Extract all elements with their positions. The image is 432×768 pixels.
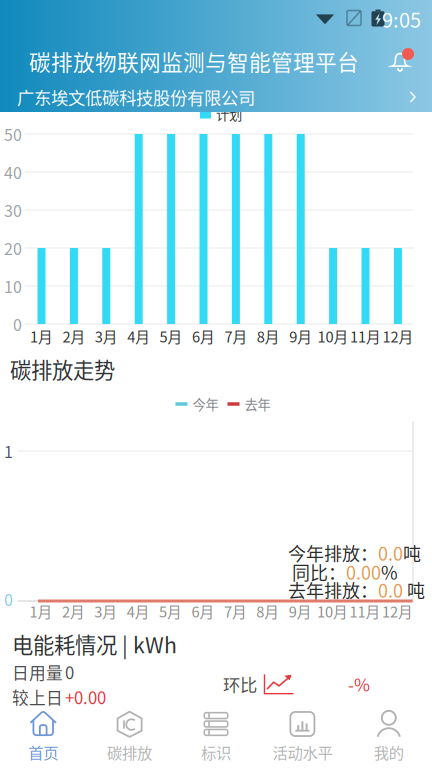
staticText: 30 bbox=[4, 198, 22, 222]
staticText: 4月 bbox=[127, 325, 150, 347]
staticText: 计划 bbox=[216, 104, 242, 124]
staticText: 0.0 bbox=[378, 540, 403, 566]
staticText: 6月 bbox=[192, 325, 215, 347]
staticText: 4月 bbox=[127, 600, 150, 622]
staticText: 7月 bbox=[224, 600, 247, 622]
staticText: 碳排放 bbox=[107, 741, 152, 763]
staticText: 日用量 bbox=[12, 660, 63, 684]
staticText: 8月 bbox=[256, 600, 279, 622]
staticText: 12月 bbox=[382, 600, 413, 622]
staticText: -% bbox=[348, 671, 370, 697]
staticText: 碳排放物联网监测与智能管理平台 bbox=[29, 45, 359, 77]
staticText: 5月 bbox=[160, 325, 183, 347]
staticText: 环比 bbox=[223, 671, 257, 697]
staticText: 碳排放走势 bbox=[10, 354, 115, 384]
staticText: 标识 bbox=[201, 741, 231, 763]
staticText: 20 bbox=[4, 236, 22, 260]
staticText: 今年排放： bbox=[288, 540, 378, 566]
staticText: 10 bbox=[4, 274, 22, 298]
staticText: 3月 bbox=[94, 600, 117, 622]
staticText: 12月 bbox=[382, 325, 413, 347]
staticText: 1 bbox=[4, 439, 13, 463]
staticText: 3月 bbox=[95, 325, 118, 347]
button[interactable]: 活动水平 bbox=[259, 706, 346, 768]
staticText: 9月 bbox=[289, 325, 312, 347]
staticText: 11月 bbox=[350, 325, 381, 347]
staticText: 1月 bbox=[30, 325, 53, 347]
staticText: 8月 bbox=[257, 325, 280, 347]
staticText: 10月 bbox=[317, 600, 348, 622]
staticText: 0 bbox=[4, 587, 13, 611]
button[interactable]: 通知 bbox=[379, 38, 423, 82]
staticText: +0.00 bbox=[65, 685, 106, 709]
staticText: 吨 bbox=[403, 577, 425, 603]
staticText: 1月 bbox=[29, 600, 52, 622]
staticText: 吨 bbox=[403, 540, 421, 566]
staticText: 首页 bbox=[28, 741, 58, 763]
button[interactable]: 碳排放 bbox=[86, 706, 173, 768]
staticText: 10月 bbox=[318, 325, 349, 347]
staticText: 我的 bbox=[374, 741, 404, 763]
staticText: 同比： bbox=[292, 559, 346, 585]
staticText: 0 bbox=[65, 660, 74, 684]
staticText: 50 bbox=[4, 122, 22, 146]
staticText: 0 bbox=[13, 312, 22, 336]
staticText: 11月 bbox=[349, 600, 380, 622]
button[interactable]: 广东埃文低碳科技股份有限公司 bbox=[0, 82, 432, 112]
staticText: 电能耗情况 | kWh bbox=[12, 629, 177, 659]
staticText: % bbox=[381, 559, 398, 585]
staticText: 5月 bbox=[159, 600, 182, 622]
button[interactable]: 首页 bbox=[0, 706, 86, 768]
staticText: 去年 bbox=[244, 394, 270, 414]
staticText: 40 bbox=[4, 160, 22, 184]
button[interactable]: 我的 bbox=[346, 706, 432, 768]
button[interactable]: 标识 bbox=[173, 706, 259, 768]
staticText: 0.0 bbox=[378, 577, 403, 603]
staticText: 活动水平 bbox=[272, 741, 332, 763]
staticText: 6月 bbox=[191, 600, 214, 622]
staticText: 去年排放： bbox=[288, 577, 378, 603]
staticText: 广东埃文低碳科技股份有限公司 bbox=[17, 84, 255, 110]
staticText: 9:05 bbox=[382, 4, 421, 33]
staticText: 2月 bbox=[62, 325, 85, 347]
staticText: 9月 bbox=[289, 600, 312, 622]
staticText: 今年 bbox=[192, 394, 218, 414]
staticText: 较上日 bbox=[12, 685, 63, 709]
staticText: 7月 bbox=[224, 325, 247, 347]
staticText: 2月 bbox=[62, 600, 85, 622]
staticText: 0.00 bbox=[346, 559, 381, 585]
